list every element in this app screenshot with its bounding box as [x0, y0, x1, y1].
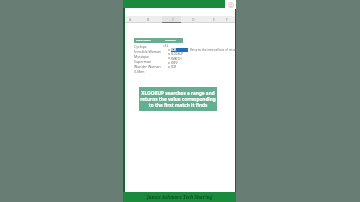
staticText: XOR — [171, 48, 177, 52]
staticText: D — [192, 17, 195, 22]
staticText: Wonder Woman — [134, 64, 161, 69]
button[interactable]: XLOOKUP searches a range and returns the… — [139, 87, 217, 111]
staticText: XMATCH — [171, 57, 182, 61]
staticText: Cyclops — [134, 44, 147, 49]
staticText: Returns the interval/size of return — [190, 48, 238, 52]
staticText: Invisible Woman — [134, 49, 162, 54]
button[interactable]: XMATCH — [171, 57, 188, 61]
staticText: XNPV — [171, 61, 178, 65]
button[interactable]: XLOOKUP — [171, 52, 188, 56]
staticText: C — [172, 17, 175, 22]
button[interactable]: XOR — [171, 48, 188, 52]
staticText: A — [129, 17, 132, 22]
staticText: =XL — [163, 44, 169, 48]
staticText: Super Name — [136, 38, 151, 41]
staticText: James Ashmore Tech Sharing — [147, 194, 213, 200]
staticText: B — [147, 17, 150, 22]
staticText: Universe — [165, 38, 176, 41]
staticText: XLOOKUP — [171, 52, 183, 56]
staticText: Mystique — [134, 54, 150, 59]
staticText: F — [226, 17, 228, 22]
staticText: E — [213, 17, 215, 22]
staticText: X-Men — [134, 69, 145, 74]
staticText: Superman — [134, 59, 152, 64]
button[interactable]: XOR — [171, 65, 188, 69]
staticText: XOR — [171, 65, 177, 69]
button[interactable]: XNPV — [171, 61, 188, 65]
staticText: XLOOKUP searches a range and returns the… — [139, 90, 217, 108]
button[interactable]: Account — [225, 0, 236, 9]
